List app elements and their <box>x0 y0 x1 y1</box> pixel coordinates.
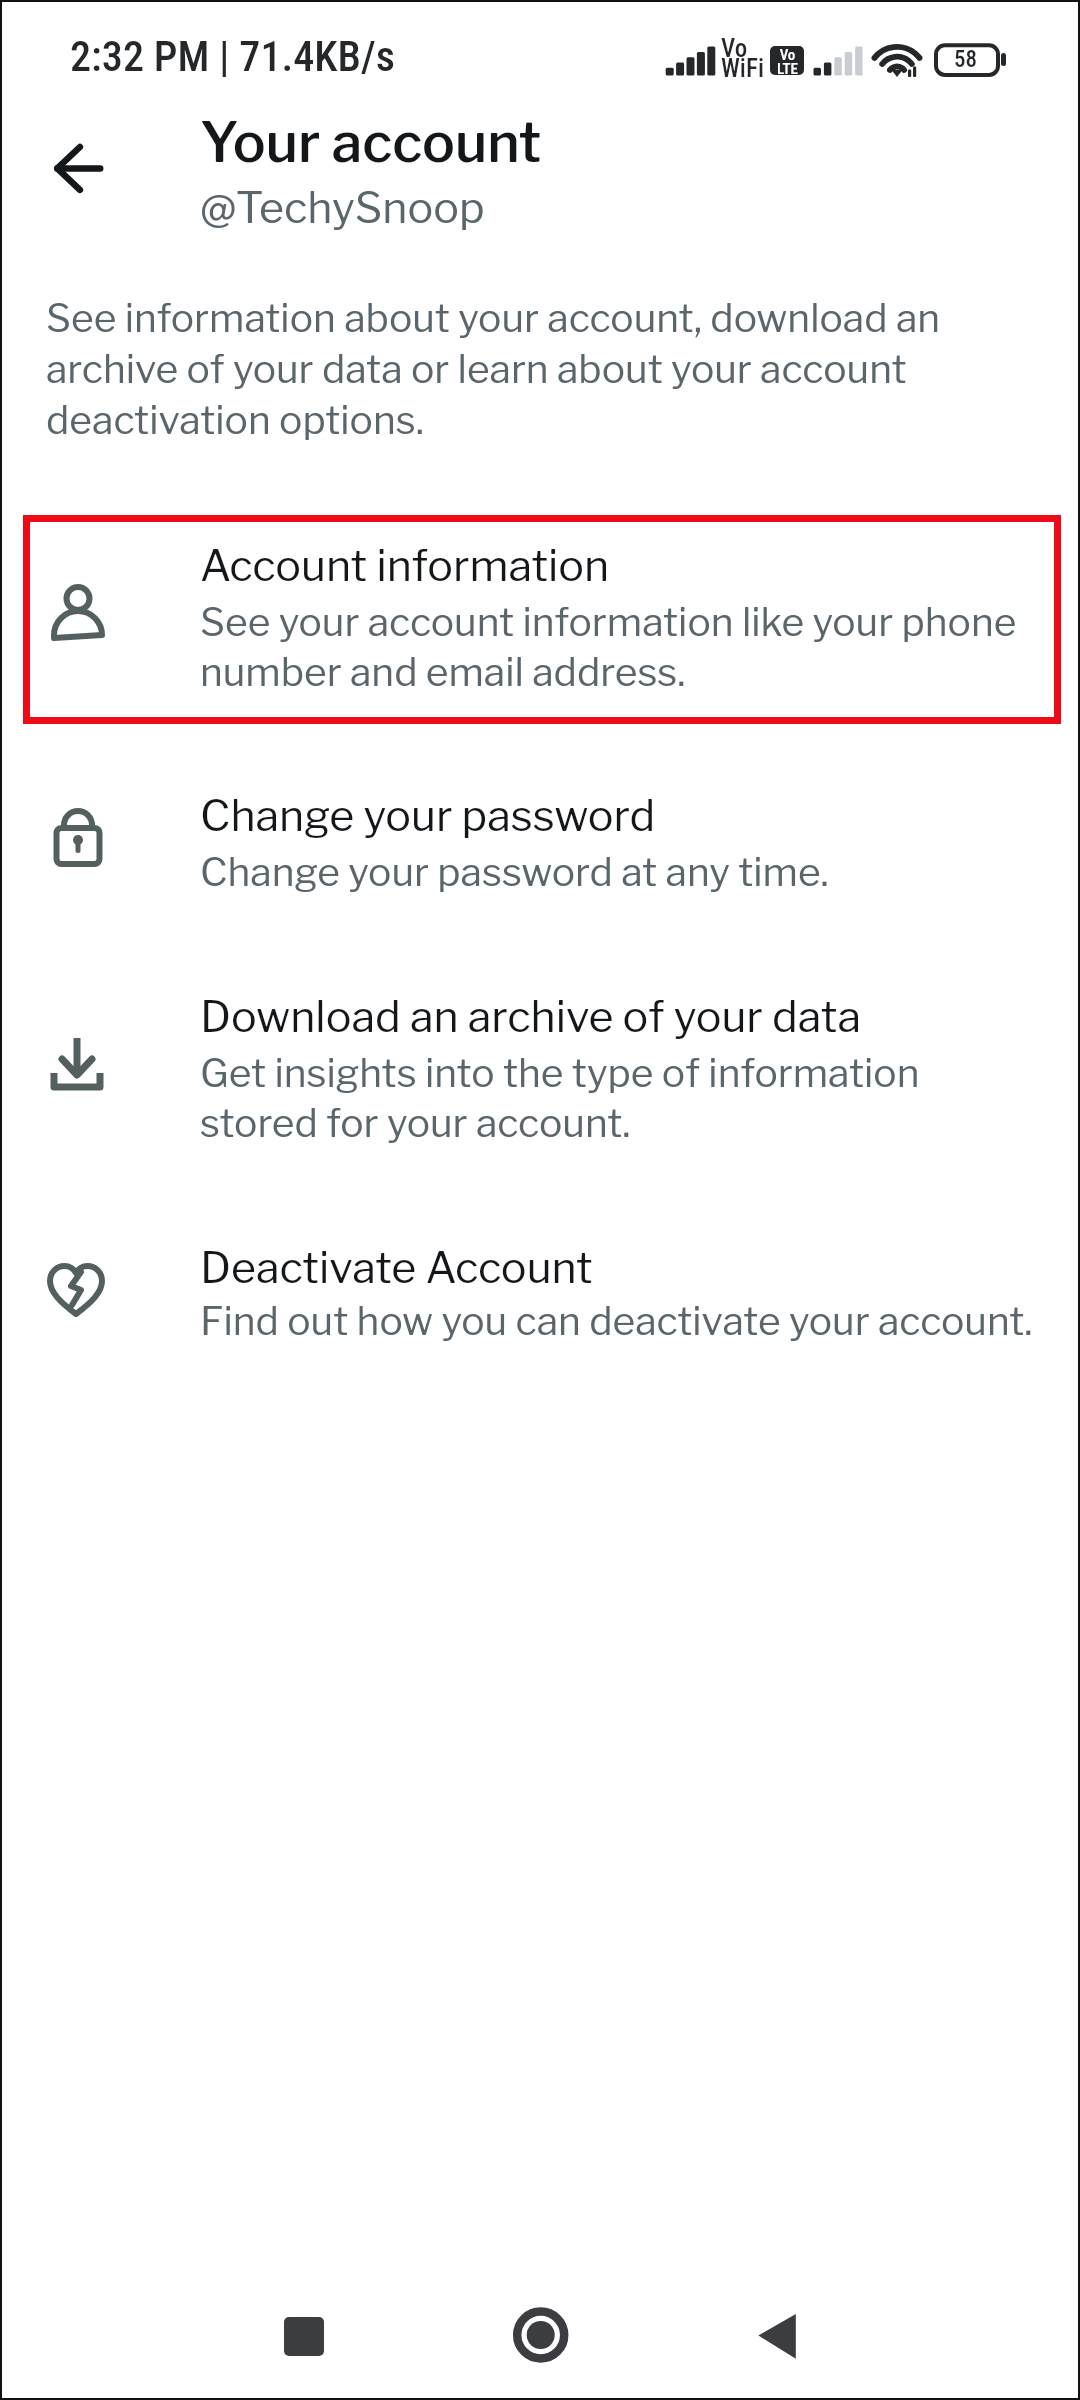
staticText: Deactivate Account <box>200 1241 593 1293</box>
staticText: Vo LTE <box>777 46 798 75</box>
staticText: Get insights into the type of informatio… <box>200 1049 920 1096</box>
staticText: Change your password <box>200 789 656 841</box>
button[interactable]: Download an archive of your data <box>1 956 1077 1188</box>
staticText: Your account <box>200 109 542 176</box>
button[interactable]: Change your password <box>1 756 1077 942</box>
staticText: 58 <box>954 46 977 73</box>
staticText: See your account information like your p… <box>200 598 1017 645</box>
button[interactable]: Deactivate Account <box>1 1211 1077 1397</box>
staticText: deactivation options. <box>46 396 424 443</box>
button[interactable]: Account information <box>1 501 1077 733</box>
staticText: Change your password at any time. <box>200 848 829 895</box>
staticText: 2:32 PM | 71.4KB/s <box>70 32 395 81</box>
button[interactable]: Back <box>722 2281 832 2391</box>
button[interactable]: Home <box>486 2281 596 2391</box>
staticText: @TechySnoop <box>200 181 485 233</box>
staticText: See information about your account, down… <box>46 294 941 341</box>
button[interactable]: Back <box>35 124 123 212</box>
staticText: Account information <box>200 539 610 591</box>
staticText: stored for your account. <box>200 1099 631 1146</box>
staticText: number and email address. <box>200 648 686 695</box>
staticText: Find out how you can deactivate your acc… <box>200 1297 1033 1344</box>
staticText: Download an archive of your data <box>200 990 861 1042</box>
staticText: Vo WiFi <box>721 34 764 83</box>
button[interactable]: Recent apps <box>249 2281 359 2391</box>
staticText: archive of your data or learn about your… <box>46 345 907 392</box>
